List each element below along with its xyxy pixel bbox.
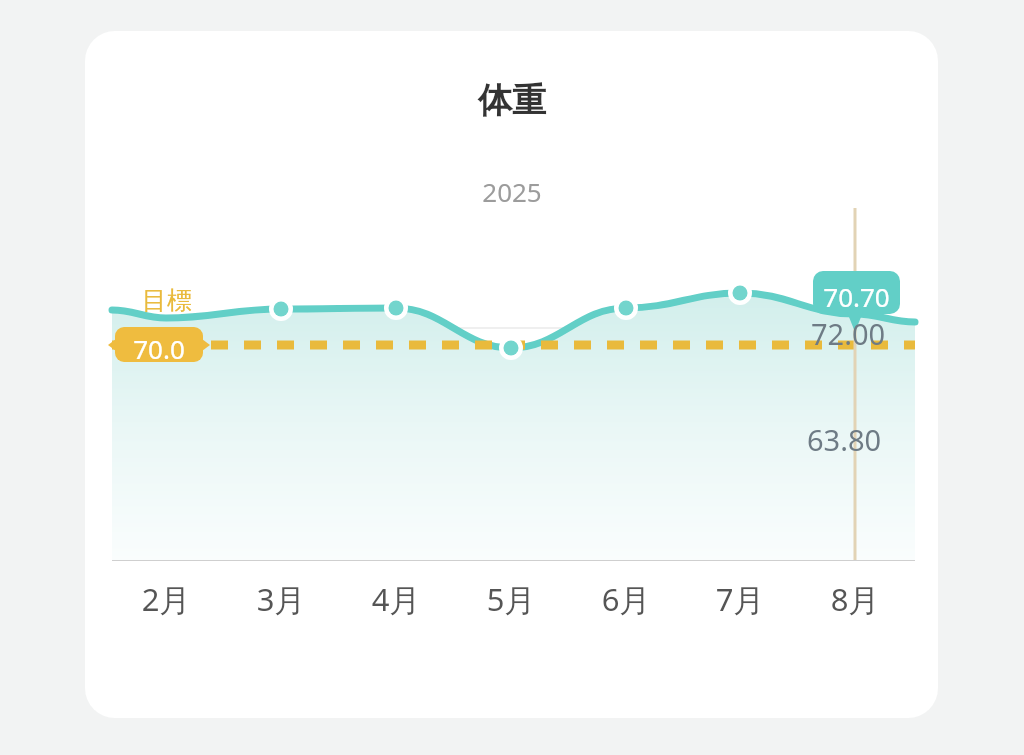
- button[interactable]: [85, 31, 938, 718]
- button[interactable]: 4月: [348, 578, 444, 624]
- button[interactable]: 3月: [233, 578, 329, 624]
- button[interactable]: 7月: [692, 578, 788, 624]
- button[interactable]: 5月: [463, 578, 559, 624]
- staticText: 3月: [233, 578, 329, 624]
- staticText: 63.80: [807, 420, 882, 459]
- staticText: 目標: [142, 285, 192, 316]
- button[interactable]: Goal 70.0: [115, 328, 203, 362]
- staticText: 2025: [0, 174, 1024, 755]
- staticText: 70.0: [115, 331, 203, 365]
- staticText: 2月: [118, 578, 214, 624]
- staticText: 6月: [578, 578, 674, 624]
- staticText: 7月: [692, 578, 788, 624]
- staticText: 72.00: [811, 314, 886, 353]
- staticText: 体重: [0, 79, 1024, 755]
- button[interactable]: Current weight 70.70: [813, 274, 900, 314]
- staticText: 70.70: [813, 279, 900, 319]
- button[interactable]: 2月: [118, 578, 214, 624]
- staticText: 8月: [807, 578, 903, 624]
- button[interactable]: 8月: [807, 578, 903, 624]
- staticText: 5月: [463, 578, 559, 624]
- staticText: 4月: [348, 578, 444, 624]
- button[interactable]: 6月: [578, 578, 674, 624]
